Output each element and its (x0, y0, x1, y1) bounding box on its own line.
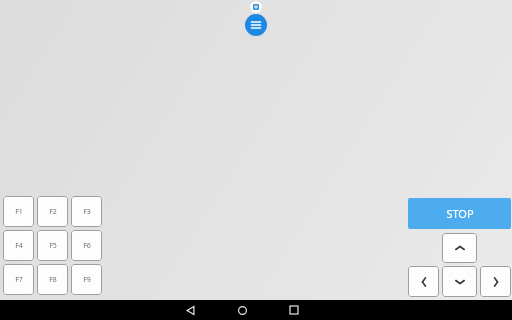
button[interactable]: Home (222, 300, 262, 320)
button[interactable]: Up (442, 233, 477, 263)
staticText: F8 (49, 275, 57, 285)
button[interactable]: Status indicator (250, 1, 262, 13)
button[interactable]: Back (170, 300, 210, 320)
button[interactable]: F6 (71, 230, 102, 261)
staticText: F5 (49, 241, 57, 251)
button[interactable]: F9 (71, 264, 102, 295)
button[interactable]: F3 (71, 196, 102, 227)
button[interactable]: Menu (245, 14, 267, 36)
button[interactable]: F4 (3, 230, 34, 261)
button[interactable]: Down (442, 266, 477, 297)
button[interactable]: Recent apps (274, 300, 314, 320)
button[interactable]: STOP (408, 198, 511, 229)
button[interactable]: F7 (3, 264, 34, 295)
staticText: F9 (83, 275, 91, 285)
button[interactable]: Left (408, 266, 439, 297)
button[interactable]: Right (480, 266, 511, 297)
staticText: F2 (49, 207, 57, 217)
staticText: F3 (83, 207, 91, 217)
staticText: F7 (15, 275, 23, 285)
button[interactable]: F2 (37, 196, 68, 227)
staticText: F6 (83, 241, 91, 251)
button[interactable]: F5 (37, 230, 68, 261)
button[interactable]: F8 (37, 264, 68, 295)
staticText: F4 (15, 241, 23, 251)
staticText: F1 (15, 207, 23, 217)
button[interactable]: F1 (3, 196, 34, 227)
staticText: STOP (446, 206, 474, 221)
